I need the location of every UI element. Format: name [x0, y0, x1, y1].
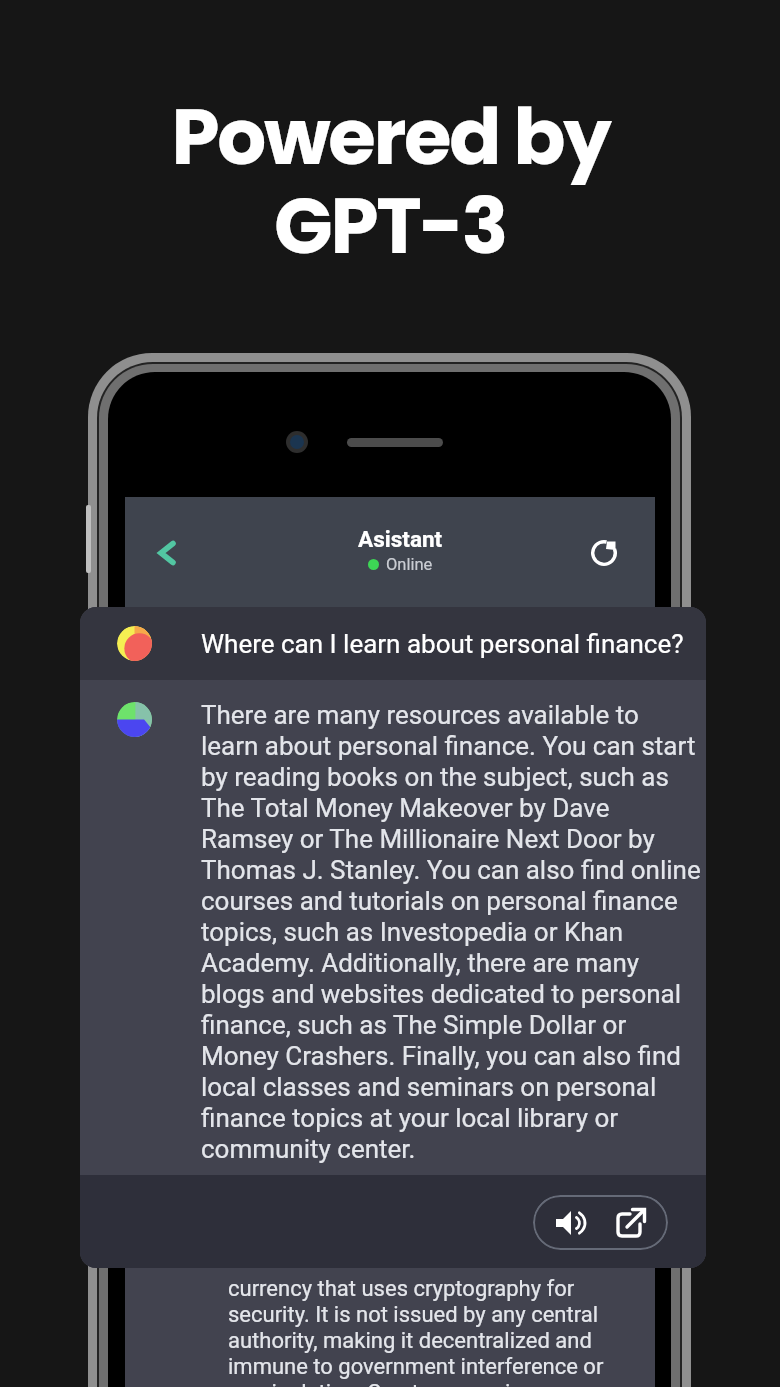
- button[interactable]: Back: [141, 527, 193, 579]
- staticText: Asistant: [358, 526, 443, 552]
- staticText: Powered by: [171, 83, 610, 191]
- staticText: currency that uses cryptography for secu…: [228, 1276, 620, 1387]
- button[interactable]: Where can I learn about personal finance…: [80, 607, 706, 680]
- staticText: Where can I learn about personal finance…: [201, 629, 684, 659]
- staticText: Online: [386, 555, 433, 574]
- button[interactable]: Share: [608, 1200, 654, 1246]
- staticText: There are many resources available to le…: [201, 700, 702, 1165]
- staticText: GPT-3: [274, 172, 506, 280]
- button[interactable]: Refresh: [578, 527, 630, 579]
- button[interactable]: Read aloud: [547, 1200, 593, 1246]
